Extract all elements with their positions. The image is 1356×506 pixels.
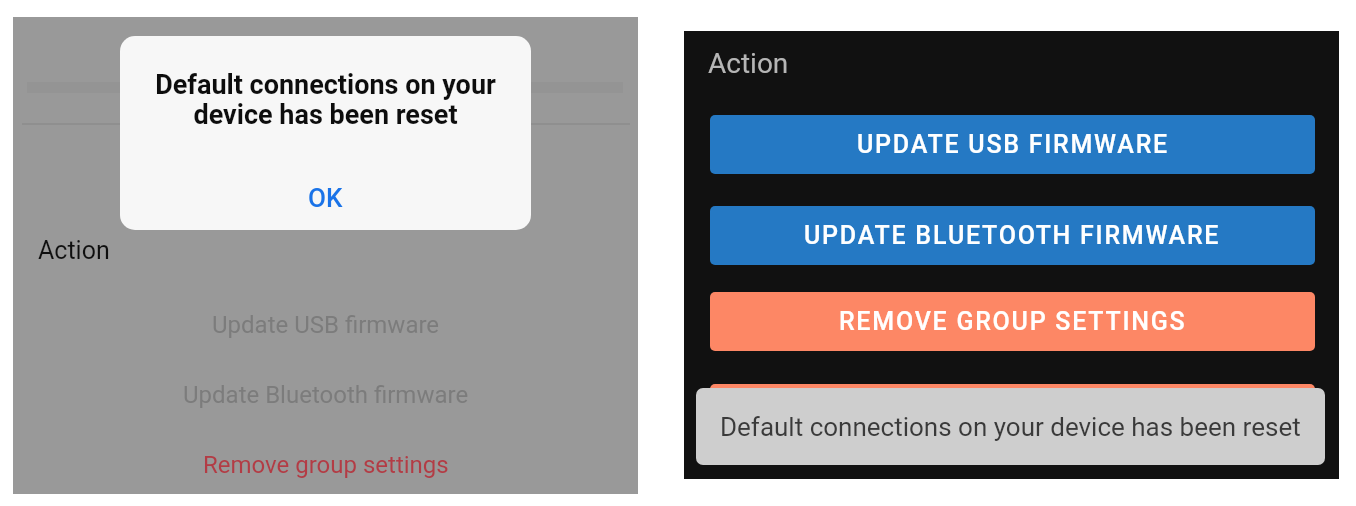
button[interactable]: Reset default connections	[710, 384, 1315, 443]
staticText: UPDATE BLUETOOTH FIRMWARE	[804, 221, 1221, 250]
staticText: Default connections on your device has b…	[152, 69, 499, 130]
button[interactable]: Remove group settings	[13, 435, 638, 495]
staticText: Action	[38, 236, 110, 265]
button[interactable]: UPDATE USB FIRMWARE	[710, 115, 1315, 174]
staticText: Default connections on your device has b…	[720, 412, 1301, 442]
staticText: Remove group settings	[203, 451, 449, 479]
button[interactable]: Update USB firmware	[13, 295, 638, 355]
button[interactable]: REMOVE GROUP SETTINGS	[710, 292, 1315, 351]
staticText: Action	[708, 47, 789, 80]
button[interactable]: UPDATE BLUETOOTH FIRMWARE	[710, 206, 1315, 265]
button[interactable]: OK	[120, 173, 531, 223]
staticText: Update Bluetooth firmware	[183, 381, 469, 409]
staticText: OK	[308, 183, 343, 213]
button[interactable]: Update Bluetooth firmware	[13, 365, 638, 425]
staticText: REMOVE GROUP SETTINGS	[839, 307, 1187, 336]
staticText: Update USB firmware	[212, 311, 440, 339]
staticText: UPDATE USB FIRMWARE	[857, 130, 1169, 159]
